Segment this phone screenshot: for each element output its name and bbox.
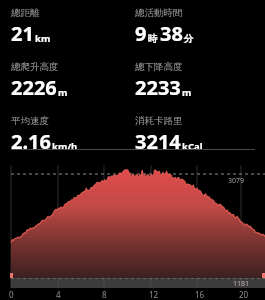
button[interactable]: Elevation profile chart	[0, 155, 265, 300]
button[interactable]: 總爬升高度	[11, 61, 135, 101]
staticText: 38	[160, 20, 183, 47]
button[interactable]: 平均速度	[11, 115, 135, 155]
staticText: 平均速度	[11, 115, 49, 127]
button[interactable]: 消耗卡路里	[135, 115, 257, 155]
staticText: 9	[135, 20, 147, 47]
staticText: 20	[239, 289, 249, 300]
staticText: 分	[184, 33, 194, 45]
staticText: 消耗卡路里	[135, 115, 183, 127]
staticText: 8	[102, 289, 107, 300]
staticText: 4	[56, 289, 61, 300]
staticText: 3079	[228, 176, 245, 186]
button[interactable]: 總距離	[11, 7, 135, 47]
staticText: 16	[195, 289, 205, 300]
staticText: 1181	[233, 279, 250, 289]
staticText: 時	[148, 33, 158, 45]
staticText: 總距離	[11, 7, 40, 19]
staticText: m	[58, 86, 68, 99]
staticText: 12	[149, 289, 159, 300]
staticText: 總活動時間	[135, 7, 183, 19]
button[interactable]: 總下降高度	[135, 61, 257, 101]
staticText: km/h	[52, 140, 78, 153]
staticText: 3214	[135, 128, 181, 155]
staticText: 2.16	[11, 128, 51, 155]
staticText: 2233	[135, 74, 181, 101]
staticText: kCal	[182, 140, 203, 153]
staticText: 總爬升高度	[11, 61, 59, 73]
staticText: m	[182, 86, 192, 99]
staticText: 2226	[11, 74, 57, 101]
staticText: 總下降高度	[135, 61, 183, 73]
staticText: 0	[9, 289, 14, 300]
staticText: km	[35, 32, 51, 45]
staticText: 21	[11, 20, 34, 47]
button[interactable]: 總活動時間	[135, 7, 257, 47]
